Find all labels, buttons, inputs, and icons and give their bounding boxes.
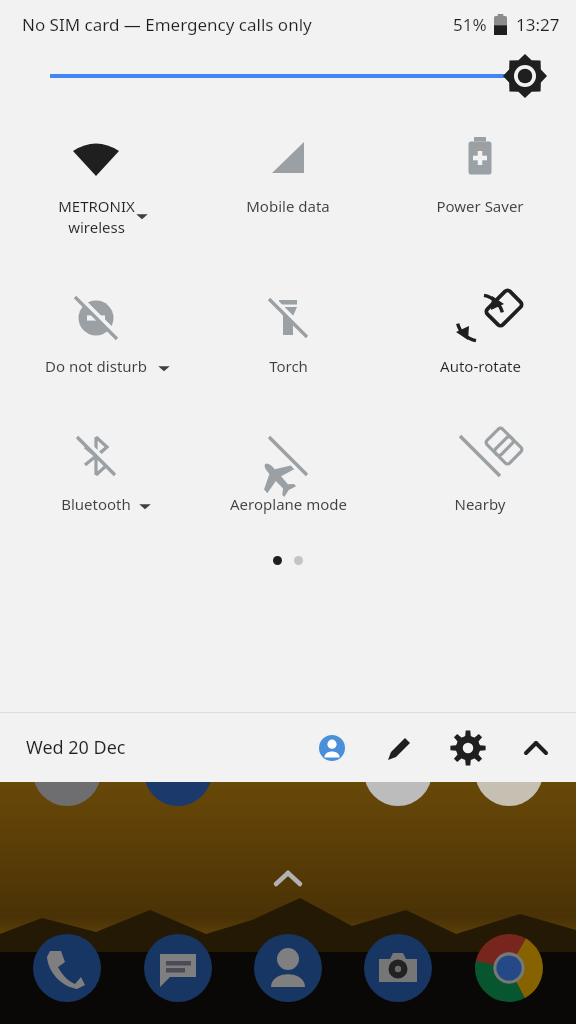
staticText: No SIM card — Emergency calls only xyxy=(22,13,312,36)
button[interactable]: Settings xyxy=(450,730,486,766)
button[interactable]: Edit xyxy=(382,730,418,766)
button[interactable]: Power Saver xyxy=(384,134,576,216)
button[interactable]: Mobile data xyxy=(192,134,384,216)
staticText: Auto-rotate xyxy=(440,356,521,376)
staticText: Do not disturb xyxy=(45,356,147,376)
staticText: 13:27 xyxy=(516,13,560,36)
button[interactable]: Do not disturb xyxy=(0,294,192,376)
staticText: Aeroplane mode xyxy=(230,494,347,514)
staticText: METRONIX wireless xyxy=(58,196,135,238)
staticText: Power Saver xyxy=(436,196,524,216)
staticText: Torch xyxy=(269,356,308,376)
staticText: 51% xyxy=(453,13,487,36)
button[interactable]: Aeroplane mode xyxy=(192,432,384,514)
button[interactable]: Torch xyxy=(192,294,384,376)
staticText: Wed 20 Dec xyxy=(26,735,126,760)
button[interactable]: Nearby xyxy=(384,432,576,514)
button[interactable]: Bluetooth xyxy=(0,432,192,514)
button[interactable]: Collapse xyxy=(518,730,554,766)
button[interactable]: User xyxy=(314,730,350,766)
button[interactable]: Auto-rotate xyxy=(384,294,576,376)
staticText: Nearby xyxy=(454,494,506,514)
button[interactable]: Brightness xyxy=(0,48,576,104)
button[interactable]: METRONIX wireless xyxy=(0,134,192,238)
staticText: Mobile data xyxy=(246,196,330,216)
staticText: Bluetooth xyxy=(61,494,131,514)
